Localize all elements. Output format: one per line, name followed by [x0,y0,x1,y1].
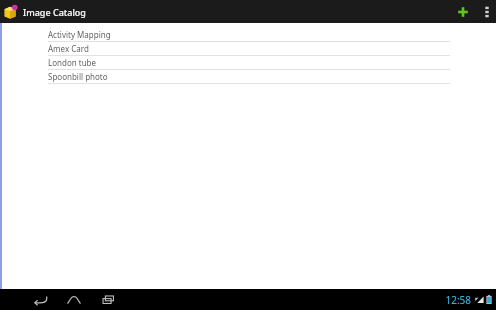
button[interactable]: More options [478,0,496,23]
staticText: Image Catalog [23,6,86,18]
button[interactable]: Recent apps [94,289,122,310]
button[interactable]: Back [26,289,54,310]
staticText: Amex Card [48,43,89,54]
button[interactable]: Add [448,0,478,23]
staticText: 12:58 [445,293,471,307]
button[interactable]: London tube [48,56,450,70]
staticText: London tube [48,57,97,68]
staticText: Spoonbill photo [48,71,108,82]
button[interactable]: Spoonbill photo [48,70,450,84]
button[interactable]: Home [60,289,88,310]
button[interactable]: Activity Mapping [48,28,450,42]
button[interactable]: Amex Card [48,42,450,56]
staticText: Activity Mapping [48,29,111,40]
